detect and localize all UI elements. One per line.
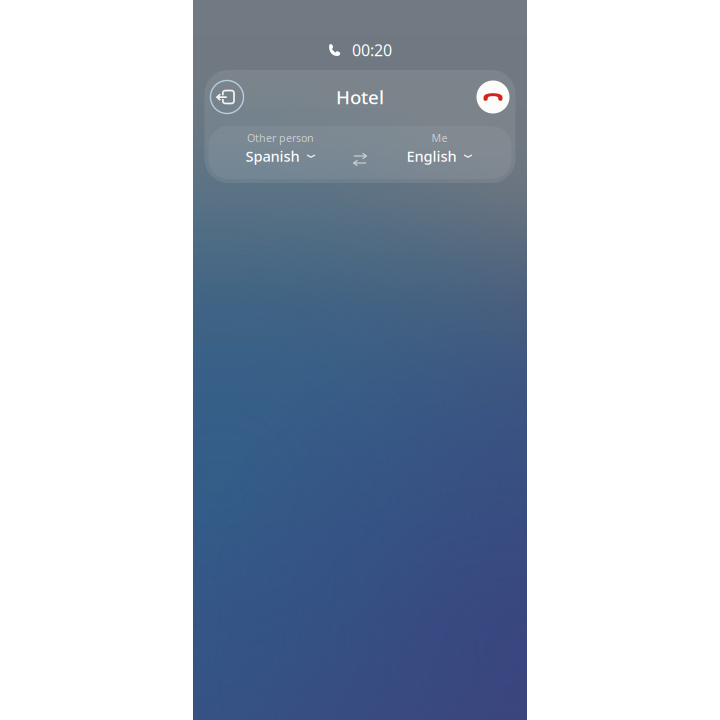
button[interactable]: Other person [218, 127, 342, 172]
staticText: Me [431, 131, 447, 145]
staticText: Spanish [245, 146, 299, 166]
button[interactable]: End call [476, 80, 509, 113]
staticText: Hotel [336, 85, 384, 109]
staticText: English [406, 146, 456, 166]
staticText: 00:20 [352, 39, 392, 61]
button[interactable]: Leave call [210, 80, 243, 113]
button[interactable]: Swap languages [346, 135, 374, 163]
button[interactable]: Me [377, 127, 501, 172]
staticText: Other person [247, 131, 314, 145]
